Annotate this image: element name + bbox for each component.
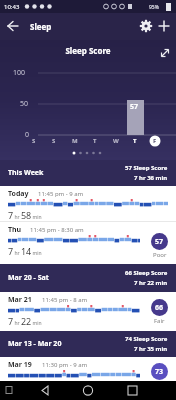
- staticText: T: [133, 137, 137, 145]
- staticText: 74 Sleep Score: [125, 335, 168, 343]
- staticText: 7 hr 22 min: [134, 279, 168, 287]
- staticText: 0: [25, 130, 30, 140]
- staticText: W: [113, 137, 119, 145]
- staticText: 57 Sleep Score: [125, 164, 168, 172]
- button[interactable]: [0, 381, 58, 400]
- staticText: 57: [130, 102, 139, 112]
- button[interactable]: Mar 13 - Mar 20: [0, 331, 176, 357]
- staticText: S: [32, 137, 36, 145]
- button[interactable]: Thu: [0, 222, 176, 264]
- staticText: Today: [8, 189, 29, 199]
- staticText: Poor: [153, 251, 167, 259]
- button[interactable]: [159, 47, 171, 59]
- staticText: 11:45 pm - 8 am: [42, 296, 88, 304]
- staticText: Sleep: [30, 21, 52, 32]
- staticText: 10:43: [4, 3, 20, 11]
- staticText: Sleep Score: [0, 45, 176, 56]
- staticText: 7 hr 22 min: [8, 315, 42, 327]
- staticText: 50: [20, 99, 29, 109]
- button[interactable]: 73: [151, 363, 168, 380]
- button[interactable]: [157, 19, 171, 33]
- staticText: Mar 21: [8, 295, 32, 305]
- staticText: Fair: [154, 317, 165, 325]
- staticText: 95%: [149, 4, 159, 11]
- button[interactable]: [117, 381, 176, 400]
- staticText: F: [153, 137, 157, 145]
- staticText: 11:45 pm - 9 am: [38, 190, 84, 198]
- staticText: 66 Sleep Score: [125, 269, 168, 277]
- staticText: Thu: [8, 225, 22, 235]
- button[interactable]: 66: [151, 299, 168, 316]
- staticText: 73: [155, 367, 164, 377]
- button[interactable]: Mar 19: [0, 357, 176, 381]
- button[interactable]: This Week: [0, 160, 176, 186]
- staticText: 11:45 pm - 8:30 am: [30, 226, 84, 234]
- button[interactable]: Mar 21: [0, 292, 176, 331]
- staticText: T: [93, 137, 97, 145]
- button[interactable]: [139, 19, 153, 33]
- button[interactable]: Today: [0, 186, 176, 221]
- staticText: 7 hr 58 min: [8, 209, 42, 221]
- staticText: M: [72, 137, 78, 145]
- staticText: 7 hr 36 min: [134, 174, 168, 182]
- staticText: 7 hr 14 min: [8, 245, 42, 257]
- staticText: S: [52, 137, 56, 145]
- staticText: This Week: [8, 168, 44, 178]
- staticText: 7 hr 35 min: [134, 345, 168, 353]
- staticText: Mar 19: [8, 360, 32, 370]
- staticText: 57: [155, 237, 164, 247]
- staticText: 100: [13, 68, 26, 78]
- button[interactable]: Mar 20 - Sat: [0, 264, 176, 292]
- staticText: 66: [155, 303, 164, 313]
- button[interactable]: [6, 19, 20, 33]
- button[interactable]: [58, 381, 117, 400]
- staticText: 11:30 pm - 9 am: [42, 361, 88, 369]
- staticText: Mar 20 - Sat: [8, 273, 49, 283]
- staticText: Mar 13 - Mar 20: [8, 339, 62, 349]
- button[interactable]: 57: [151, 233, 168, 250]
